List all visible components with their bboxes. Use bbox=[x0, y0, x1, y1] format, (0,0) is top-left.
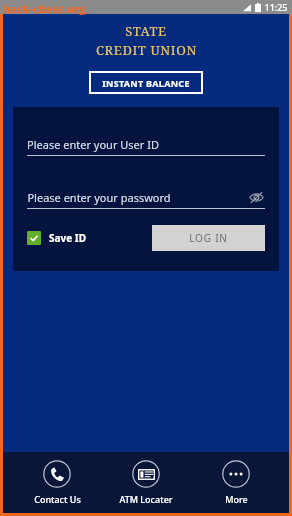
button[interactable]: LOG IN bbox=[152, 225, 265, 251]
staticText: ATM Locater bbox=[119, 493, 173, 505]
staticText: hack-cheat.org bbox=[3, 1, 86, 16]
staticText: Please enter your User ID bbox=[27, 137, 159, 152]
staticText: More bbox=[225, 493, 248, 505]
staticText: Save ID bbox=[49, 231, 86, 245]
button[interactable]: Save ID bbox=[27, 231, 86, 245]
staticText: Please enter your password bbox=[27, 190, 171, 205]
button[interactable]: Please enter your User ID bbox=[27, 133, 265, 155]
button[interactable]: Contact Us bbox=[21, 456, 93, 509]
button[interactable]: ATM Locater bbox=[110, 456, 182, 509]
button[interactable]: More bbox=[200, 456, 272, 509]
button[interactable]: Please enter your password bbox=[27, 186, 265, 208]
staticText: CREDIT UNION bbox=[96, 41, 197, 59]
staticText: STATE bbox=[125, 22, 167, 40]
staticText: INSTANT BALANCE bbox=[102, 77, 190, 89]
staticText: Contact Us bbox=[34, 493, 81, 505]
button[interactable]: INSTANT BALANCE bbox=[89, 71, 203, 94]
staticText: LOG IN bbox=[189, 231, 228, 245]
button[interactable]: Show password bbox=[247, 188, 265, 206]
staticText: 11:25 bbox=[264, 1, 288, 13]
